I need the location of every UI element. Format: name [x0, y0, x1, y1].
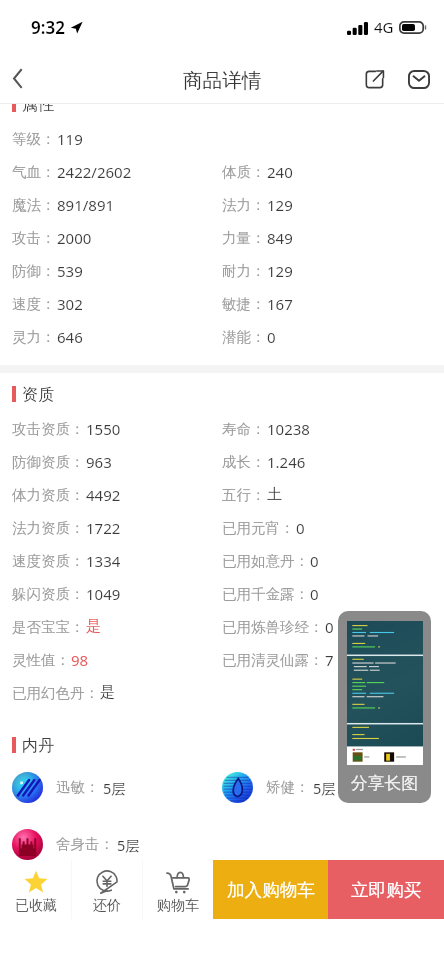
staticText: 速度资质：	[12, 552, 85, 570]
staticText: 167	[267, 294, 293, 314]
staticText: 1049	[86, 584, 121, 604]
staticText: 1.246	[267, 452, 306, 472]
staticText: 129	[267, 261, 293, 281]
button[interactable]: 还价	[72, 860, 142, 919]
staticText: 商品详情	[183, 68, 262, 93]
staticText: 98	[71, 650, 89, 670]
staticText: 240	[267, 162, 293, 182]
staticText: 躲闪资质：	[12, 585, 85, 603]
staticText: 体质：	[222, 163, 266, 181]
staticText: 寿命：	[222, 420, 266, 438]
staticText: 2422/2602	[57, 162, 132, 182]
staticText: 129	[267, 195, 293, 215]
staticText: 5层	[103, 778, 126, 798]
staticText: 0	[310, 584, 319, 604]
staticText: 魔法：	[12, 196, 56, 214]
staticText: 防御：	[12, 262, 56, 280]
staticText: 立即购买	[351, 879, 422, 901]
staticText: 法力资质：	[12, 519, 85, 537]
staticText: 已用炼兽珍经：	[222, 618, 324, 636]
staticText: 646	[57, 327, 83, 347]
staticText: 0	[267, 327, 276, 347]
staticText: 已用千金露：	[222, 585, 309, 603]
button[interactable]: Share	[352, 58, 396, 102]
staticText: 10238	[267, 419, 310, 439]
staticText: 是	[86, 617, 101, 636]
staticText: 9:32	[31, 16, 65, 39]
staticText: 1334	[86, 551, 121, 571]
button[interactable]: Back	[0, 56, 40, 104]
staticText: 等级：	[12, 130, 56, 148]
staticText: 963	[86, 452, 112, 472]
staticText: 土	[267, 485, 282, 504]
staticText: 539	[57, 261, 83, 281]
staticText: 攻击资质：	[12, 420, 85, 438]
staticText: 已收藏	[15, 897, 57, 915]
staticText: 1722	[86, 518, 121, 538]
staticText: 5层	[313, 778, 336, 798]
staticText: 119	[57, 129, 83, 149]
staticText: 已用幻色丹：	[12, 684, 99, 702]
staticText: 属性	[22, 94, 55, 114]
staticText: 潜能：	[222, 328, 266, 346]
staticText: 耐力：	[222, 262, 266, 280]
staticText: 力量：	[222, 229, 266, 247]
staticText: 攻击：	[12, 229, 56, 247]
staticText: 1550	[86, 419, 121, 439]
staticText: 还价	[93, 897, 121, 915]
staticText: 灵力：	[12, 328, 56, 346]
staticText: 敏捷：	[222, 295, 266, 313]
button[interactable]: 加入购物车	[213, 860, 328, 919]
staticText: 资质	[22, 384, 55, 404]
staticText: 5层	[117, 835, 140, 855]
staticText: 4492	[86, 485, 121, 505]
staticText: 矫健：	[266, 778, 310, 796]
staticText: 是否宝宝：	[12, 618, 85, 636]
staticText: 0	[325, 617, 334, 637]
staticText: 灵性值：	[12, 651, 70, 669]
staticText: 速度：	[12, 295, 56, 313]
staticText: 防御资质：	[12, 453, 85, 471]
button[interactable]: 分享长图	[338, 611, 431, 803]
staticText: 加入购物车	[227, 879, 315, 901]
staticText: 891/891	[57, 195, 115, 215]
staticText: 0	[296, 518, 305, 538]
staticText: 法力：	[222, 196, 266, 214]
button[interactable]: Messages	[397, 58, 441, 102]
staticText: 分享长图	[351, 773, 419, 794]
staticText: 舍身击：	[56, 835, 114, 853]
staticText: 2000	[57, 228, 92, 248]
staticText: 成长：	[222, 453, 266, 471]
staticText: 已用清灵仙露：	[222, 651, 324, 669]
staticText: 849	[267, 228, 293, 248]
staticText: 五行：	[222, 486, 266, 504]
staticText: 气血：	[12, 163, 56, 181]
button[interactable]: 已收藏	[0, 860, 71, 919]
staticText: 4G	[374, 17, 394, 37]
staticText: 已用如意丹：	[222, 552, 309, 570]
staticText: 购物车	[157, 897, 199, 915]
staticText: 是	[100, 683, 115, 702]
staticText: 7	[325, 650, 334, 670]
staticText: 已用元宵：	[222, 519, 295, 537]
button[interactable]: 购物车	[143, 860, 213, 919]
staticText: 体力资质：	[12, 486, 85, 504]
staticText: 302	[57, 294, 83, 314]
staticText: 0	[310, 551, 319, 571]
button[interactable]: 立即购买	[328, 860, 444, 919]
staticText: 内丹	[22, 735, 55, 755]
staticText: 迅敏：	[56, 778, 100, 796]
